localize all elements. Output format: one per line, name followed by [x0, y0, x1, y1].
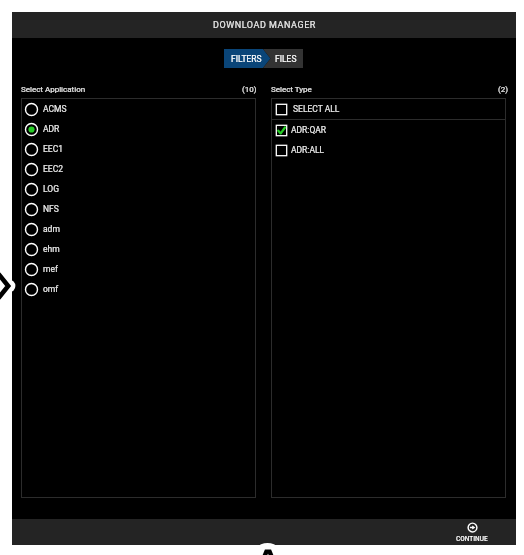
- button[interactable]: mef: [21, 259, 256, 279]
- staticText: CONTINUE: [456, 534, 488, 543]
- button[interactable]: FILTERS: [224, 49, 268, 68]
- button[interactable]: SELECT ALL: [271, 99, 506, 119]
- button[interactable]: ACMS: [21, 99, 256, 119]
- button[interactable]: ehm: [21, 239, 256, 259]
- staticText: omf: [43, 284, 59, 294]
- button[interactable]: Continue: [449, 519, 495, 545]
- staticText: mef: [43, 264, 58, 274]
- button[interactable]: LOG: [21, 179, 256, 199]
- staticText: NFS: [43, 204, 59, 214]
- staticText: ehm: [43, 244, 60, 254]
- button[interactable]: ADR: [21, 119, 256, 139]
- staticText: ADR: [43, 124, 60, 134]
- button[interactable]: ADR:ALL: [271, 140, 506, 160]
- button[interactable]: omf: [21, 279, 256, 299]
- button[interactable]: adm: [21, 219, 256, 239]
- staticText: LOG: [43, 184, 59, 194]
- button[interactable]: EEC2: [21, 159, 256, 179]
- staticText: ADR:QAR: [291, 125, 327, 135]
- staticText: adm: [43, 224, 60, 234]
- staticText: FILTERS: [231, 54, 262, 64]
- staticText: (2): [498, 85, 509, 94]
- staticText: Select Application: [21, 85, 86, 94]
- button[interactable]: FILES: [270, 49, 301, 68]
- staticText: ADR:ALL: [291, 145, 325, 155]
- button[interactable]: EEC1: [21, 139, 256, 159]
- button[interactable]: ADR:QAR: [271, 120, 506, 140]
- staticText: Select Type: [271, 85, 312, 94]
- staticText: DOWNLOAD MANAGER: [213, 20, 316, 31]
- staticText: FILES: [275, 54, 297, 64]
- button[interactable]: NFS: [21, 199, 256, 219]
- staticText: EEC2: [43, 164, 63, 174]
- staticText: ACMS: [43, 104, 67, 114]
- staticText: (10): [242, 85, 257, 94]
- staticText: EEC1: [43, 144, 63, 154]
- staticText: SELECT ALL: [293, 104, 340, 114]
